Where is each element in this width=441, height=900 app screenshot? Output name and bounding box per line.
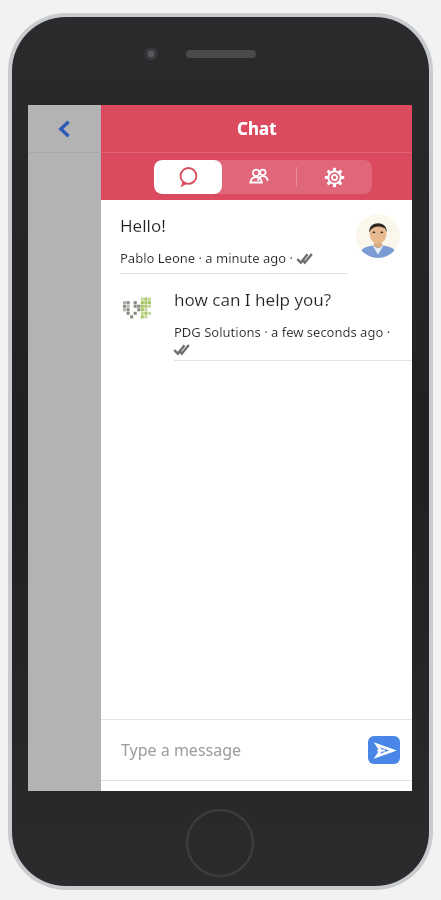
button[interactable]: Contacts tab [222,160,296,194]
staticText: Chat [237,117,277,140]
button[interactable]: Back [28,105,101,152]
other: Pablo Leone avatar [356,214,400,258]
staticText: Type a message [121,739,242,761]
staticText: Hello! [120,214,166,237]
button[interactable]: Settings tab [297,160,372,194]
button[interactable]: Send [368,736,400,764]
button[interactable]: how can I help you? [101,274,412,361]
button[interactable]: Type a message [121,720,368,780]
staticText: how can I help you? [174,288,332,311]
button[interactable]: Hello! [101,200,412,274]
button[interactable]: Chat tab [154,160,222,194]
staticText: PDG Solutions · a few seconds ago · [174,323,391,341]
staticText: Pablo Leone · a minute ago · [120,249,297,267]
